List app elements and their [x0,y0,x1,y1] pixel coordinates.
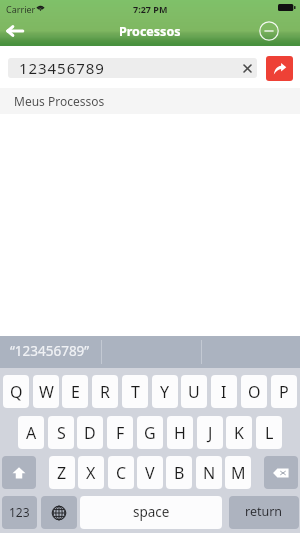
staticText: F [116,422,125,444]
button[interactable]: O [241,375,267,408]
staticText: X [86,462,96,484]
button[interactable]: Clear [240,61,254,75]
button[interactable]: Remove [254,18,283,44]
staticText: E [71,381,80,403]
button[interactable]: Q [3,375,29,408]
staticText: 123 [9,504,30,520]
staticText: D [84,422,96,444]
button[interactable]: E [62,375,88,408]
staticText: return [245,503,283,520]
button[interactable]: 123 [2,496,37,529]
button[interactable]: space [80,496,222,529]
button[interactable]: Y [152,375,178,408]
staticText: K [234,422,244,444]
staticText: W [39,381,54,403]
staticText: M [231,462,246,484]
button[interactable]: X [78,456,104,489]
button[interactable]: F [107,416,133,449]
button[interactable]: G [137,416,163,449]
button[interactable]: P [271,375,297,408]
staticText: B [174,462,185,484]
staticText: Carrier [6,3,36,15]
staticText: A [26,422,37,444]
staticText: Z [57,462,67,484]
staticText: L [265,422,274,444]
button[interactable]: C [108,456,134,489]
button[interactable]: M [225,456,251,489]
button[interactable]: A [18,416,44,449]
button[interactable]: T [122,375,148,408]
button[interactable]: B [166,456,192,489]
staticText: O [248,381,261,403]
button[interactable]: Search [266,56,293,81]
staticText: “123456789” [10,342,90,360]
staticText: space [133,503,170,521]
button[interactable]: K [226,416,252,449]
staticText: 7:27 PM [133,3,168,15]
staticText: V [145,462,155,484]
staticText: Q [10,381,23,403]
staticText: 123456789 [19,58,105,78]
button[interactable]: D [77,416,103,449]
button[interactable]: V [137,456,163,489]
button[interactable]: H [167,416,193,449]
button[interactable]: L [256,416,282,449]
button[interactable]: Z [49,456,75,489]
button[interactable]: N [196,456,222,489]
button[interactable]: Shift [2,456,36,489]
button[interactable]: S [48,416,74,449]
staticText: H [174,422,186,444]
staticText: J [208,422,213,444]
button[interactable]: return [229,496,299,529]
button[interactable]: J [197,416,223,449]
staticText: I [221,381,227,403]
button[interactable]: Back [0,18,30,44]
staticText: P [279,381,289,403]
staticText: G [144,422,156,444]
staticText: Processos [119,23,181,40]
staticText: Meus Processos [14,93,105,109]
staticText: S [57,422,66,444]
button[interactable]: R [92,375,118,408]
button[interactable]: 123456789 [8,58,257,78]
staticText: C [116,462,127,484]
staticText: N [203,462,216,484]
button[interactable]: Language [41,496,77,529]
button[interactable]: I [211,375,237,408]
button[interactable]: “123456789” [0,336,100,368]
button[interactable]: U [181,375,207,408]
button[interactable]: W [33,375,59,408]
staticText: T [131,381,140,403]
staticText: R [100,381,110,403]
staticText: Y [160,381,170,403]
staticText: U [188,381,200,403]
button[interactable]: Backspace [264,456,298,489]
